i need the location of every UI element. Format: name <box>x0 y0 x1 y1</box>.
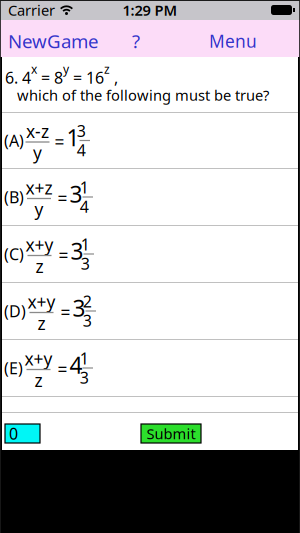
staticText: x+z <box>25 176 52 199</box>
staticText: y <box>33 141 42 164</box>
staticText: 2 <box>83 291 92 312</box>
button[interactable]: Submit <box>141 424 201 443</box>
staticText: 3 <box>77 120 86 141</box>
staticText: 4 <box>80 196 89 217</box>
staticText: z <box>34 369 42 392</box>
staticText: z <box>37 312 45 335</box>
staticText: 3 <box>72 293 85 323</box>
staticText: = <box>53 243 73 266</box>
staticText: = <box>52 186 72 209</box>
staticText: x+y <box>25 233 53 256</box>
staticText: 3 <box>80 367 89 388</box>
staticText: x+y <box>27 290 55 313</box>
staticText: (C) <box>4 243 28 265</box>
staticText: y <box>34 198 43 221</box>
staticText: 4 <box>69 350 82 380</box>
button[interactable]: (B) <box>2 169 298 225</box>
staticText: 1 <box>81 234 90 255</box>
staticText: (D) <box>4 300 30 322</box>
button[interactable]: 0 <box>5 424 40 443</box>
staticText: which of the following must be true? <box>17 85 269 105</box>
staticText: 1:29 PM <box>122 0 177 20</box>
staticText: 3 <box>83 310 92 331</box>
staticText: (B) <box>4 186 28 208</box>
staticText: Submit <box>146 424 195 443</box>
staticText: Carrier <box>8 0 55 20</box>
staticText: = <box>52 357 72 380</box>
staticText: = <box>49 130 69 153</box>
staticText: z <box>35 255 43 278</box>
button[interactable]: NewGame <box>0 29 99 53</box>
staticText: ? <box>132 29 140 53</box>
button[interactable]: (D) <box>2 283 298 339</box>
staticText: 0 <box>9 423 18 444</box>
button[interactable]: (A) <box>2 113 298 168</box>
staticText: x+y <box>24 347 52 370</box>
staticText: 3 <box>69 179 82 209</box>
staticText: 1 <box>80 348 89 369</box>
staticText: 1 <box>80 177 89 198</box>
button[interactable]: ? <box>132 29 140 53</box>
button[interactable]: (E) <box>2 340 298 396</box>
staticText: x-z <box>26 120 49 143</box>
staticText: NewGame <box>8 29 99 53</box>
staticText: 6. 4x = 8y = 16z , <box>5 61 118 88</box>
staticText: 1 <box>66 122 79 152</box>
staticText: Menu <box>209 29 257 52</box>
staticText: = <box>55 300 75 323</box>
staticText: (E) <box>4 357 27 379</box>
staticText: 3 <box>70 236 83 266</box>
staticText: 4 <box>77 139 86 161</box>
button[interactable]: Menu <box>209 29 300 52</box>
button[interactable]: (C) <box>2 226 298 282</box>
staticText: 3 <box>81 253 90 274</box>
staticText: (A) <box>4 130 28 151</box>
